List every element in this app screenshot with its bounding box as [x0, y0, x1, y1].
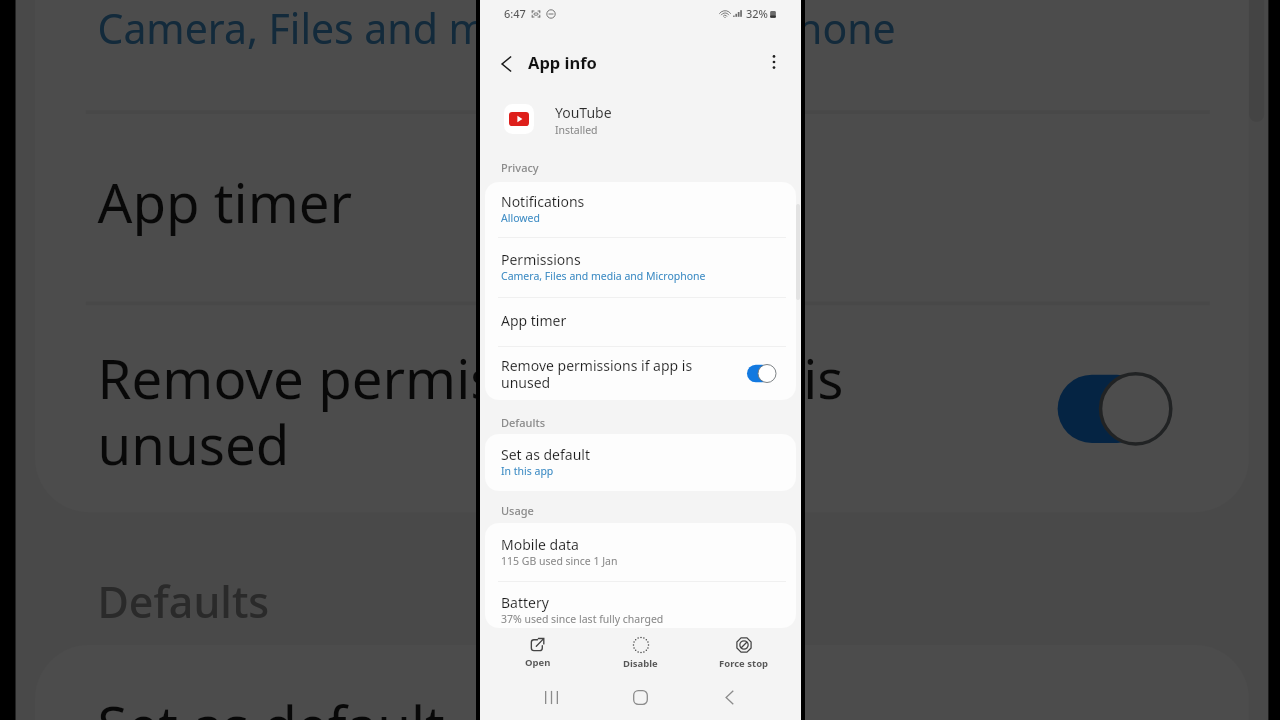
staticText: 6:47	[504, 6, 526, 21]
button[interactable]: App timer	[485, 298, 796, 346]
staticText: In this app	[501, 464, 554, 478]
staticText: Force stop	[719, 657, 769, 670]
staticText: App timer	[501, 311, 567, 330]
staticText: Permissions	[501, 250, 581, 269]
staticText: Camera, Files and media and Microphone	[501, 269, 706, 283]
staticText: Set as default	[501, 445, 590, 464]
button[interactable]: YouTube	[480, 86, 801, 148]
staticText: Installed	[555, 123, 598, 137]
button[interactable]: Recent apps	[507, 675, 596, 720]
button[interactable]: Disable	[589, 628, 692, 675]
button[interactable]: Battery	[485, 582, 796, 628]
button[interactable]: Set as default	[35, 645, 1249, 720]
button[interactable]: Back	[492, 50, 520, 78]
staticText: YouTube	[555, 103, 612, 122]
button[interactable]: Remove permissions if app is unused, on	[747, 364, 777, 383]
staticText: Open	[525, 656, 551, 669]
button[interactable]: Permissions	[35, 0, 1249, 110]
staticText: App timer	[97, 165, 355, 239]
staticText: Disable	[623, 657, 658, 670]
button[interactable]: Home	[596, 675, 685, 720]
button[interactable]: Permissions	[485, 238, 796, 297]
staticText: Privacy	[501, 160, 539, 175]
button[interactable]: Mobile data	[485, 523, 796, 581]
button[interactable]: Remove permissions if app is unused, on	[1058, 372, 1175, 446]
staticText: Set as default	[97, 688, 445, 720]
button[interactable]: Remove permissions if app is unused	[35, 305, 1249, 512]
button[interactable]: Back	[685, 675, 774, 720]
staticText: Defaults	[501, 415, 545, 430]
button[interactable]: More options	[760, 48, 788, 76]
staticText: 37% used since last fully charged	[501, 612, 664, 626]
staticText: Camera, Files and media and Microphone	[97, 1, 898, 55]
staticText: Remove permissions if app is unused	[501, 356, 739, 392]
button[interactable]: Remove permissions if app is unused	[485, 347, 796, 400]
button[interactable]: Notifications	[485, 182, 796, 237]
staticText: Notifications	[501, 192, 585, 211]
staticText: Usage	[501, 503, 534, 518]
button[interactable]: App timer	[35, 114, 1249, 301]
staticText: Mobile data	[501, 535, 579, 554]
staticText: 32%	[746, 6, 768, 21]
button[interactable]: Open	[486, 628, 589, 675]
staticText: Defaults	[97, 571, 269, 629]
button[interactable]: Force stop	[692, 628, 795, 675]
staticText: 115 GB used since 1 Jan	[501, 554, 618, 568]
staticText: Remove permissions if app is unused	[97, 340, 1026, 481]
staticText: Allowed	[501, 211, 540, 225]
staticText: Battery	[501, 593, 549, 612]
button[interactable]: Set as default	[485, 434, 796, 491]
staticText: App info	[528, 51, 597, 73]
